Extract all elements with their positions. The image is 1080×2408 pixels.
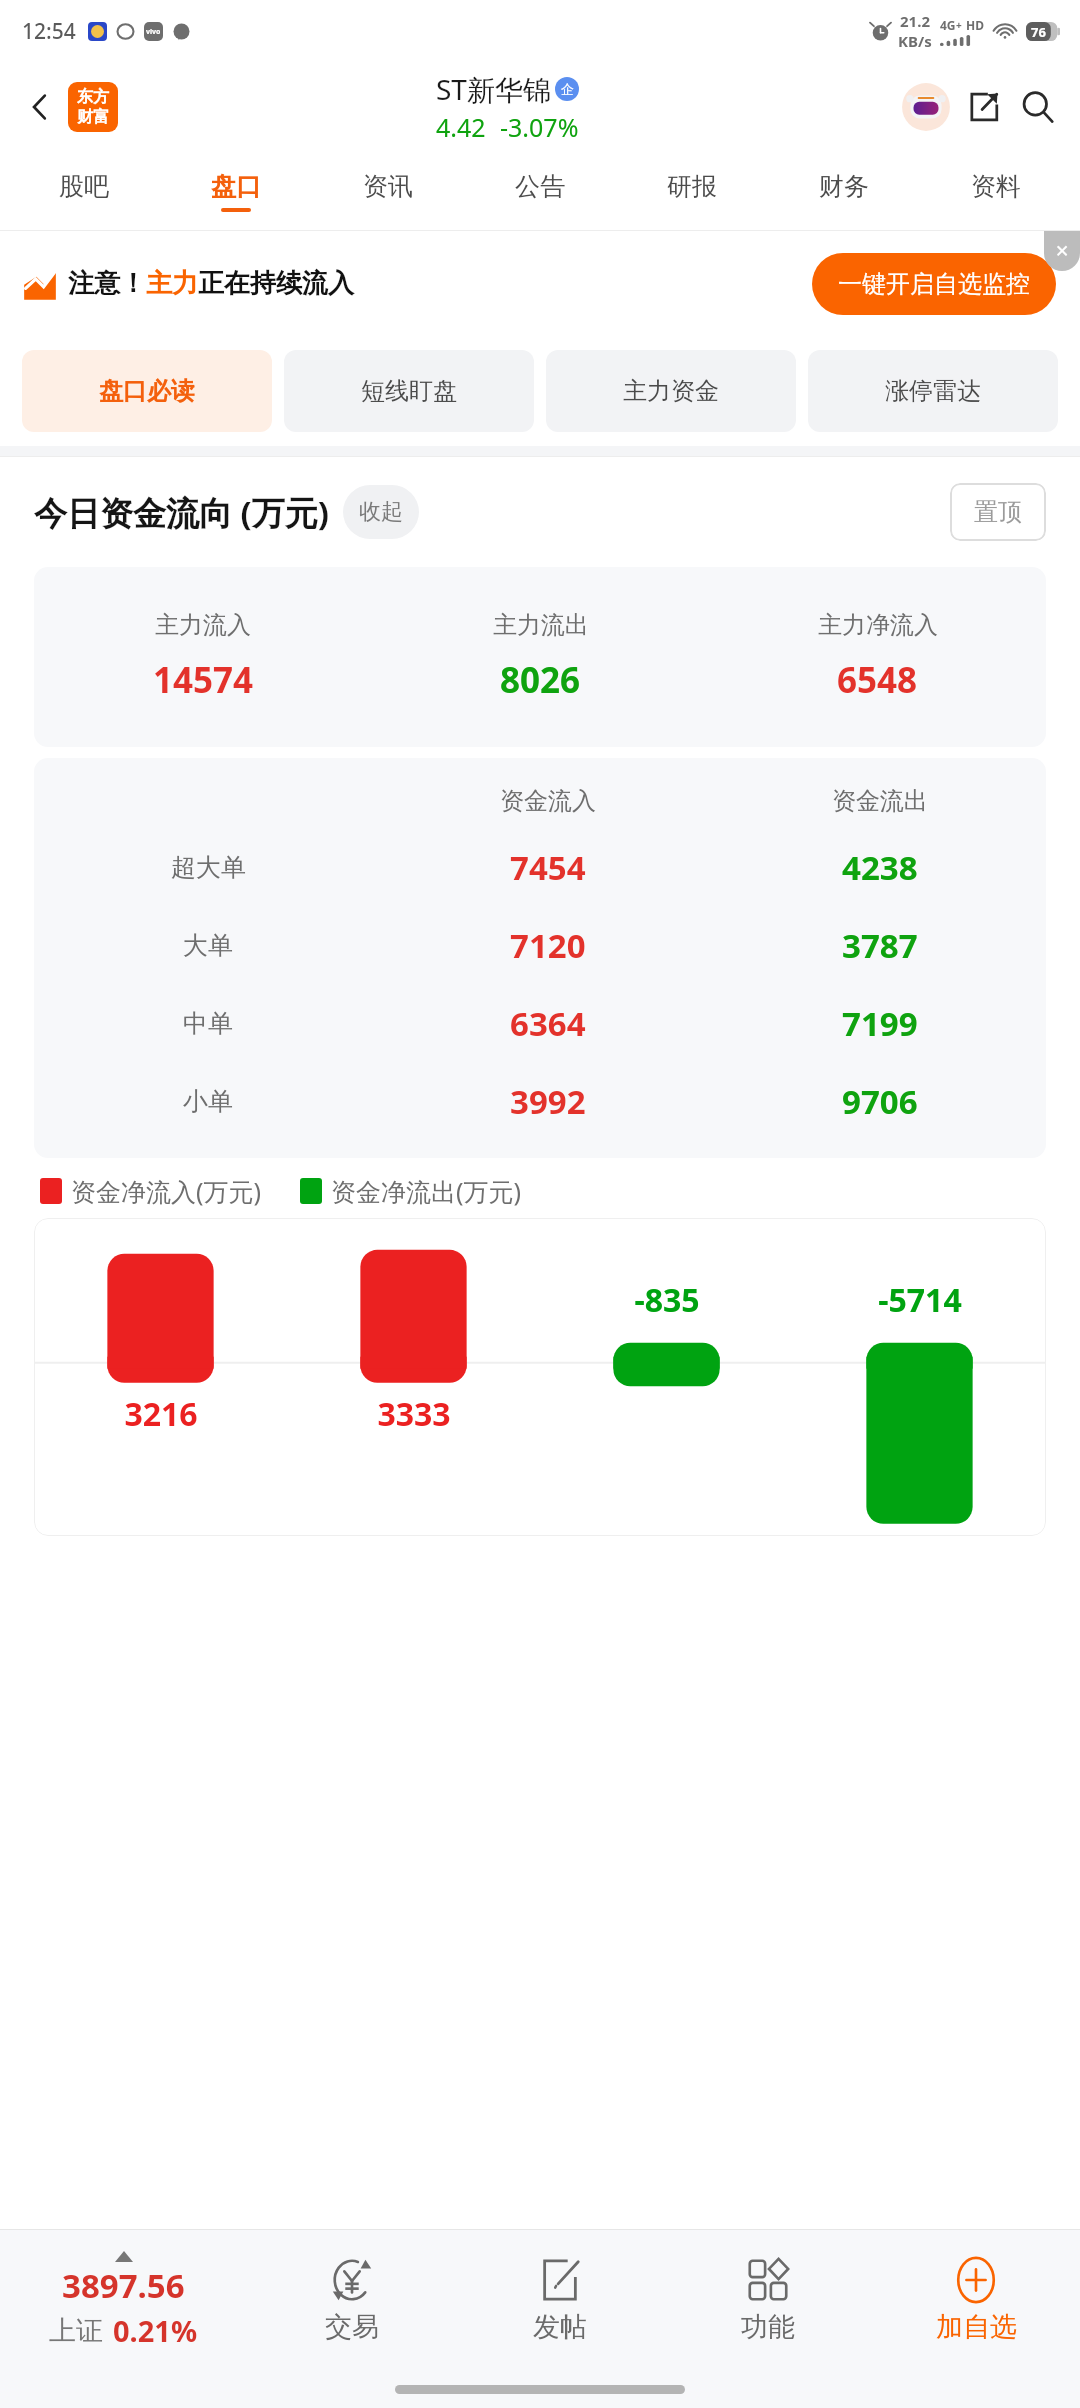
staticText: 注意！ xyxy=(68,267,146,300)
button[interactable]: 功能 xyxy=(664,2230,872,2370)
staticText: 主力 xyxy=(146,267,198,300)
button[interactable]: Back xyxy=(14,81,66,133)
staticText: 0.21% xyxy=(113,2311,198,2350)
staticText: -835 xyxy=(634,1278,700,1322)
button[interactable]: AI assistant xyxy=(898,79,954,135)
staticText: 8026 xyxy=(500,656,581,704)
staticText: 财务 xyxy=(819,171,869,202)
staticText: 资讯 xyxy=(363,171,413,202)
button[interactable]: 股吧 xyxy=(8,152,160,230)
staticText: 一键开启自选监控 xyxy=(838,269,1030,299)
staticText: + xyxy=(956,18,962,32)
staticText: -5714 xyxy=(878,1278,962,1322)
staticText: HD xyxy=(966,17,984,33)
button[interactable]: 一键开启自选监控 xyxy=(812,253,1056,315)
staticText: 主力流出 xyxy=(493,610,589,640)
staticText: 4.42 xyxy=(436,110,486,144)
staticText: 企 xyxy=(561,81,574,97)
staticText: 9706 xyxy=(842,1079,918,1124)
button[interactable]: 置顶 xyxy=(950,483,1046,541)
button[interactable]: 东方财富 xyxy=(68,82,118,132)
button[interactable]: 3897.56 xyxy=(0,2230,247,2370)
staticText: 发帖 xyxy=(533,2310,587,2344)
button[interactable]: 资料 xyxy=(920,152,1072,230)
button[interactable]: 涨停雷达 xyxy=(808,350,1058,432)
staticText: 资金净流出(万元) xyxy=(331,1174,522,1208)
button[interactable]: 盘口必读 xyxy=(22,350,272,432)
staticText: 3787 xyxy=(842,923,918,968)
staticText: 6548 xyxy=(837,656,918,704)
staticText: 公告 xyxy=(515,171,565,202)
staticText: 大单 xyxy=(183,930,233,961)
staticText: 4G xyxy=(940,17,956,33)
staticText: 加自选 xyxy=(936,2310,1017,2344)
button[interactable]: 3216 xyxy=(34,1218,1046,1536)
staticText: 3992 xyxy=(510,1079,586,1124)
button[interactable]: 发帖 xyxy=(456,2230,664,2370)
staticText: 短线盯盘 xyxy=(361,376,457,406)
staticText: 交易 xyxy=(325,2310,379,2344)
button[interactable]: 研报 xyxy=(616,152,768,230)
staticText: 76 xyxy=(1031,23,1046,41)
button[interactable]: Search xyxy=(1012,81,1064,133)
button[interactable]: Close xyxy=(1044,231,1080,271)
staticText: 功能 xyxy=(741,2310,795,2344)
staticText: 7120 xyxy=(510,923,586,968)
staticText: 超大单 xyxy=(171,852,246,883)
staticText: 东方 xyxy=(77,87,109,107)
staticText: 3216 xyxy=(124,1392,198,1436)
staticText: 主力流入 xyxy=(155,610,251,640)
staticText: 资料 xyxy=(971,171,1021,202)
button[interactable]: 主力流入 xyxy=(34,567,1046,747)
staticText: 6364 xyxy=(510,1001,586,1046)
staticText: 涨停雷达 xyxy=(885,376,981,406)
button[interactable]: 资讯 xyxy=(312,152,464,230)
staticText: 资金流出 xyxy=(832,786,928,816)
staticText: vivo xyxy=(146,27,161,37)
staticText: -3.07% xyxy=(500,110,579,144)
staticText: KB/s xyxy=(898,31,932,51)
staticText: 股吧 xyxy=(59,171,109,202)
staticText: 资金流入 xyxy=(500,786,596,816)
button[interactable]: 交易 xyxy=(247,2230,456,2370)
staticText: 盘口必读 xyxy=(99,376,195,406)
staticText: 3897.56 xyxy=(62,2263,185,2308)
staticText: 置顶 xyxy=(974,497,1022,527)
staticText: 今日资金流向 (万元) xyxy=(34,490,329,535)
staticText: 7199 xyxy=(842,1001,918,1046)
staticText: 盘口 xyxy=(211,171,261,202)
staticText: 主力净流入 xyxy=(818,610,938,640)
staticText: 12:54 xyxy=(22,17,76,46)
staticText: 主力资金 xyxy=(623,376,719,406)
staticText: 4238 xyxy=(842,845,918,890)
staticText: 正在持续流入 xyxy=(198,267,354,300)
staticText: 21.2 xyxy=(900,11,930,31)
staticText: 上证 xyxy=(49,2314,103,2348)
button[interactable]: Share xyxy=(958,81,1010,133)
button[interactable]: 财务 xyxy=(768,152,920,230)
staticText: 中单 xyxy=(183,1008,233,1039)
button[interactable]: 盘口 xyxy=(160,152,312,230)
staticText: 研报 xyxy=(667,171,717,202)
button[interactable]: 收起 xyxy=(343,485,419,539)
staticText: 14574 xyxy=(153,656,254,704)
button[interactable]: 公告 xyxy=(464,152,616,230)
staticText: 资金净流入(万元) xyxy=(71,1174,262,1208)
staticText: 收起 xyxy=(359,498,403,526)
button[interactable]: 加自选 xyxy=(872,2230,1080,2370)
staticText: 7454 xyxy=(510,845,586,890)
staticText: ST新华锦 xyxy=(436,70,551,108)
staticText: 3333 xyxy=(377,1392,451,1436)
button[interactable]: 资金流入 xyxy=(34,758,1046,1158)
staticText: ✕ xyxy=(1055,241,1070,261)
button[interactable]: 主力资金 xyxy=(546,350,796,432)
staticText: 小单 xyxy=(183,1086,233,1117)
button[interactable]: 短线盯盘 xyxy=(284,350,534,432)
staticText: 财富 xyxy=(77,107,109,127)
